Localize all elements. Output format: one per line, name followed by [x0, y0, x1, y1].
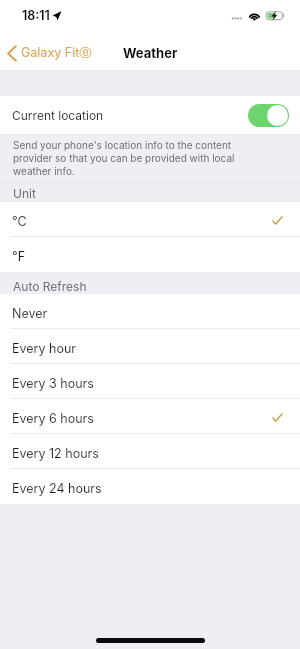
staticText: Every hour — [12, 341, 77, 356]
button[interactable]: Every 3 hours — [0, 364, 300, 399]
staticText: Current location — [12, 108, 104, 123]
button[interactable]: Every 6 hours — [0, 399, 300, 434]
staticText: Every 12 hours — [12, 446, 99, 461]
staticText: Never — [12, 306, 48, 321]
staticText: °C — [12, 214, 27, 229]
button[interactable]: Never — [0, 294, 300, 329]
staticText: Every 24 hours — [12, 481, 102, 496]
staticText: Every 6 hours — [12, 411, 94, 426]
staticText: Unit — [13, 186, 36, 201]
staticText: Every 3 hours — [12, 376, 94, 391]
staticText: Weather — [123, 45, 178, 61]
button[interactable]: Every 24 hours — [0, 469, 300, 504]
button[interactable]: Current location — [0, 96, 300, 134]
staticText: Galaxy Fitⓔ — [21, 45, 92, 61]
staticText: Auto Refresh — [13, 279, 87, 294]
button[interactable]: Every 12 hours — [0, 434, 300, 469]
button[interactable]: Back to Galaxy Fit e — [0, 36, 92, 70]
staticText: 18:11 — [22, 8, 50, 23]
button[interactable]: Every hour — [0, 329, 300, 364]
staticText: Send your phone's location info to the c… — [13, 139, 245, 177]
staticText: °F — [12, 249, 26, 264]
button[interactable]: °F — [0, 237, 300, 272]
button[interactable]: °C — [0, 202, 300, 237]
